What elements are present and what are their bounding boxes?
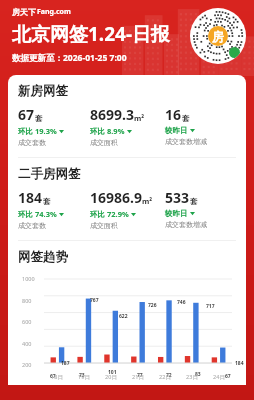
staticText: 环比 8.9% [90, 126, 125, 136]
staticText: 16986.9 [90, 188, 142, 207]
staticText: 184 [235, 360, 244, 367]
staticText: 600 [22, 318, 32, 325]
staticText: 800 [22, 297, 32, 304]
staticText: 400 [22, 340, 32, 347]
staticText: 成交套数 [18, 221, 46, 230]
staticText: 环比 19.3% [18, 126, 57, 136]
button[interactable]: 16 [165, 105, 236, 146]
staticText: 套 [182, 114, 190, 123]
staticText: 新房网签 [18, 83, 68, 99]
staticText: 20日 [105, 373, 117, 381]
staticText: 767 [90, 297, 99, 304]
staticText: 1000 [22, 275, 35, 282]
staticText: 较昨日 [165, 209, 188, 218]
staticText: 19日 [78, 373, 90, 381]
staticText: 67 [50, 373, 56, 380]
staticText: 成交套数增减 [165, 220, 207, 229]
staticText: 726 [148, 302, 157, 309]
button[interactable]: 533 [165, 188, 236, 229]
staticText: 北京网签1.24-日报 [12, 21, 171, 47]
staticText: 73 [79, 372, 85, 379]
staticText: m² [134, 113, 145, 123]
staticText: 房 [212, 29, 224, 44]
staticText: 187 [61, 360, 70, 367]
button[interactable]: 184 [18, 188, 90, 230]
staticText: 24日 [213, 373, 225, 381]
staticText: 网签趋势 [18, 249, 68, 265]
staticText: 环比 74.3% [18, 209, 57, 219]
staticText: 67 [18, 105, 35, 124]
button[interactable]: 扫码关注 [190, 8, 246, 64]
staticText: 成交面积 [90, 221, 118, 230]
staticText: 717 [206, 303, 215, 310]
button[interactable]: 67 [18, 105, 90, 147]
staticText: Fang.com [37, 7, 71, 17]
staticText: 成交面积 [90, 138, 118, 147]
staticText: 72 [166, 372, 172, 379]
staticText: 成交套数增减 [165, 137, 207, 146]
staticText: 18日 [51, 373, 63, 381]
staticText: 77 [137, 372, 143, 379]
staticText: 184 [18, 188, 43, 207]
staticText: 101 [108, 369, 117, 376]
staticText: m² [142, 196, 153, 206]
staticText: 622 [119, 313, 128, 320]
staticText: 套 [35, 114, 43, 123]
staticText: 21日 [132, 373, 144, 381]
staticText: 67 [225, 373, 231, 380]
staticText: 16 [165, 105, 182, 124]
staticText: 较昨日 [165, 126, 188, 135]
staticText: 8699.3 [90, 105, 134, 124]
staticText: 套 [190, 197, 198, 206]
button[interactable]: 8699.3 [90, 105, 165, 147]
staticText: 数据更新至：2026-01-25 7:00 [12, 52, 127, 64]
staticText: 二手房网签 [18, 166, 81, 182]
staticText: 22日 [159, 373, 171, 381]
staticText: 200 [22, 361, 32, 368]
button[interactable]: 16986.9 [90, 188, 165, 230]
staticText: 套 [43, 197, 51, 206]
staticText: 746 [177, 299, 186, 306]
staticText: 533 [165, 188, 190, 207]
staticText: 23日 [186, 373, 198, 381]
staticText: 房天下 [12, 7, 36, 17]
staticText: 83 [195, 371, 201, 378]
staticText: 成交套数 [18, 138, 46, 147]
staticText: 环比 72.9% [90, 209, 129, 219]
